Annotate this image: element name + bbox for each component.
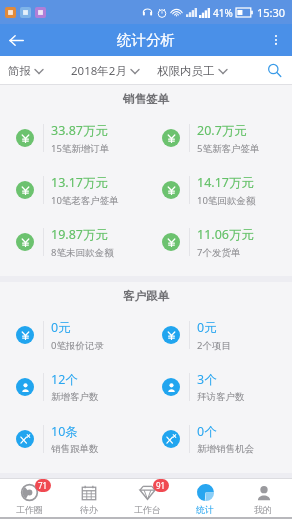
staticText: 工作台 — [134, 504, 161, 515]
button[interactable]: 待办 — [59, 478, 118, 519]
staticText: 10笔回款金额 — [197, 194, 256, 207]
staticText: 统计 — [196, 504, 214, 515]
button[interactable]: Search — [263, 56, 286, 85]
staticText: 12个 — [51, 371, 78, 388]
button[interactable]: 10条 — [0, 413, 146, 465]
staticText: 客户跟单 — [123, 289, 169, 303]
staticText: 权限内员工 — [157, 64, 215, 78]
button[interactable]: 简报 — [6, 61, 45, 81]
button[interactable]: Back — [0, 24, 32, 56]
staticText: 简报 — [8, 64, 31, 78]
staticText: 销售跟单数 — [51, 443, 99, 455]
staticText: 统计分析 — [117, 31, 175, 49]
button[interactable]: 2018年2月 — [69, 60, 141, 82]
button[interactable]: 统计 — [176, 478, 234, 519]
staticText: 拜访客户数 — [197, 391, 245, 403]
button[interactable]: 71 — [0, 478, 59, 519]
button[interactable]: 13.17万元 — [0, 164, 146, 216]
staticText: 19.87万元 — [51, 226, 108, 243]
staticText: 20.7万元 — [197, 122, 247, 139]
staticText: 10条 — [51, 423, 78, 440]
staticText: 10笔老客户签单 — [51, 194, 119, 207]
staticText: 3个 — [197, 371, 217, 388]
staticText: 8笔未回款金额 — [51, 246, 114, 259]
staticText: 0个 — [197, 423, 217, 440]
button[interactable]: More options — [260, 24, 292, 56]
staticText: 2018年2月 — [71, 63, 127, 79]
staticText: 11.06万元 — [197, 226, 254, 243]
button[interactable]: 91 — [118, 478, 176, 519]
staticText: 工作圈 — [16, 504, 43, 515]
button[interactable]: 0元 — [0, 309, 146, 361]
button[interactable]: 我的 — [234, 478, 292, 519]
button[interactable]: 33.87万元 — [0, 112, 146, 164]
staticText: 0元 — [51, 319, 71, 336]
button[interactable]: 0元 — [146, 309, 292, 361]
button[interactable]: 权限内员工 — [155, 61, 229, 81]
button[interactable]: 20.7万元 — [146, 112, 292, 164]
button[interactable]: 11.06万元 — [146, 216, 292, 268]
staticText: 91 — [156, 480, 166, 491]
staticText: 7个发货单 — [197, 246, 241, 259]
staticText: 我的 — [254, 504, 272, 515]
staticText: 14.17万元 — [197, 174, 254, 191]
staticText: 新增客户数 — [51, 391, 99, 403]
staticText: 41% — [213, 6, 233, 20]
button[interactable]: 19.87万元 — [0, 216, 146, 268]
staticText: 待办 — [80, 504, 98, 515]
staticText: 5笔新客户签单 — [197, 142, 260, 155]
staticText: 销售签单 — [123, 92, 169, 106]
staticText: 0笔报价记录 — [51, 339, 104, 352]
staticText: 33.87万元 — [51, 122, 108, 139]
staticText: 2个项目 — [197, 339, 231, 352]
button[interactable]: 3个 — [146, 361, 292, 413]
staticText: 71 — [38, 480, 48, 491]
staticText: 0元 — [197, 319, 217, 336]
staticText: 新增销售机会 — [197, 443, 254, 455]
button[interactable]: 14.17万元 — [146, 164, 292, 216]
staticText: 15:30 — [257, 5, 286, 20]
button[interactable]: 12个 — [0, 361, 146, 413]
staticText: 15笔新增订单 — [51, 142, 110, 155]
button[interactable]: 0个 — [146, 413, 292, 465]
staticText: 13.17万元 — [51, 174, 108, 191]
